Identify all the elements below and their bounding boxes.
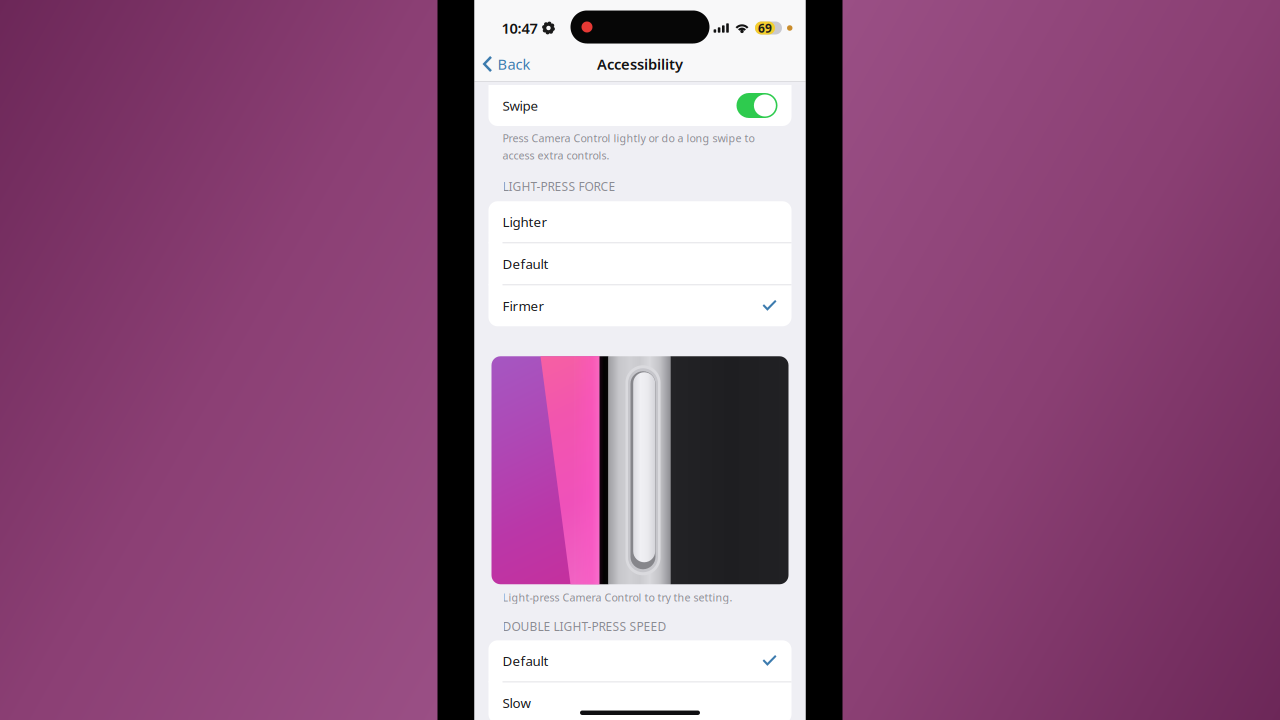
staticText: Accessibility xyxy=(597,54,683,74)
staticText: LIGHT-PRESS FORCE xyxy=(502,178,615,194)
button[interactable]: Lighter xyxy=(488,201,791,242)
button[interactable]: Swipe xyxy=(474,85,805,126)
staticText: Swipe xyxy=(502,97,538,114)
staticText: DOUBLE LIGHT-PRESS SPEED xyxy=(502,618,666,634)
staticText: 69 xyxy=(758,20,772,36)
staticText: Slow xyxy=(502,694,530,712)
staticText: Light-press Camera Control to try the se… xyxy=(502,590,732,604)
staticText: Firmer xyxy=(502,297,544,315)
staticText: 10:47 xyxy=(501,18,537,38)
button[interactable]: Default xyxy=(488,243,791,284)
button[interactable]: Firmer xyxy=(488,285,791,326)
staticText: Lighter xyxy=(502,213,547,231)
staticText: Press Camera Control lightly or do a lon… xyxy=(502,131,754,162)
staticText: Default xyxy=(502,255,548,273)
staticText: Default xyxy=(502,652,548,670)
staticText: Back xyxy=(497,54,530,74)
button[interactable]: Default xyxy=(488,640,791,681)
button[interactable]: Slow xyxy=(488,682,791,720)
button[interactable]: Back xyxy=(474,45,538,80)
